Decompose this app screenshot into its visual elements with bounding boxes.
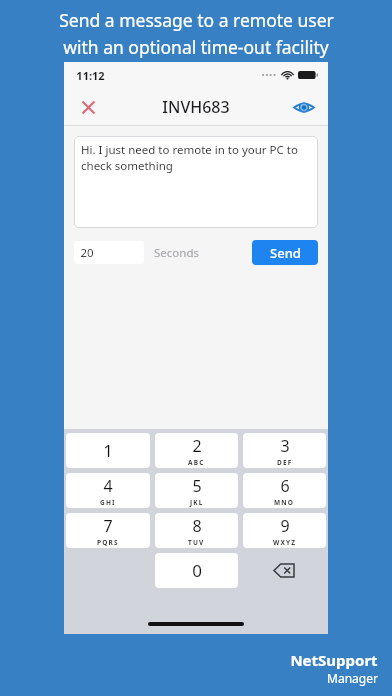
staticText: Send — [270, 244, 301, 262]
staticText: with an optional time-out facility — [63, 35, 329, 59]
staticText: Manager — [327, 670, 378, 686]
button[interactable]: Close — [72, 91, 104, 123]
button[interactable]: 9 — [243, 513, 326, 548]
button[interactable]: Backspace — [243, 553, 326, 588]
staticText: DEF — [277, 458, 293, 467]
staticText: NetSupport — [290, 650, 378, 670]
button[interactable]: 4 — [66, 473, 150, 508]
button[interactable]: 3 — [243, 433, 326, 468]
button[interactable]: 20 — [74, 241, 144, 264]
button[interactable]: 5 — [155, 473, 238, 508]
button[interactable]: 7 — [66, 513, 150, 548]
button[interactable]: 6 — [243, 473, 326, 508]
button[interactable]: Send — [252, 240, 318, 265]
button[interactable]: 1 — [66, 433, 150, 468]
staticText: 4 — [103, 475, 113, 497]
staticText: 6 — [280, 475, 290, 497]
staticText: PQRS — [97, 538, 119, 547]
staticText: Seconds — [154, 245, 199, 261]
button[interactable]: 2 — [155, 433, 238, 468]
staticText: 11:12 — [76, 68, 105, 83]
staticText: MNO — [274, 498, 295, 507]
staticText: Hi. I just need to remote in to your PC … — [81, 142, 311, 173]
staticText: GHI — [100, 498, 116, 507]
staticText: 20 — [80, 245, 94, 261]
button[interactable]: 8 — [155, 513, 238, 548]
staticText: WXYZ — [273, 538, 297, 547]
staticText: INVH683 — [162, 96, 230, 118]
staticText: 7 — [103, 515, 113, 537]
staticText: JKL — [190, 498, 204, 507]
staticText: 0 — [192, 559, 202, 582]
staticText: ABC — [188, 458, 205, 467]
staticText: 5 — [192, 475, 202, 497]
staticText: 8 — [192, 515, 202, 537]
staticText: Send a message to a remote user — [59, 8, 334, 32]
staticText: TUV — [188, 538, 205, 547]
staticText: 2 — [192, 435, 202, 457]
staticText: 9 — [280, 515, 290, 537]
staticText: 3 — [280, 435, 290, 457]
staticText: 1 — [103, 439, 113, 462]
button[interactable]: Hi. I just need to remote in to your PC … — [74, 136, 318, 228]
button[interactable]: Preview — [288, 91, 320, 123]
button[interactable]: 0 — [155, 553, 238, 588]
